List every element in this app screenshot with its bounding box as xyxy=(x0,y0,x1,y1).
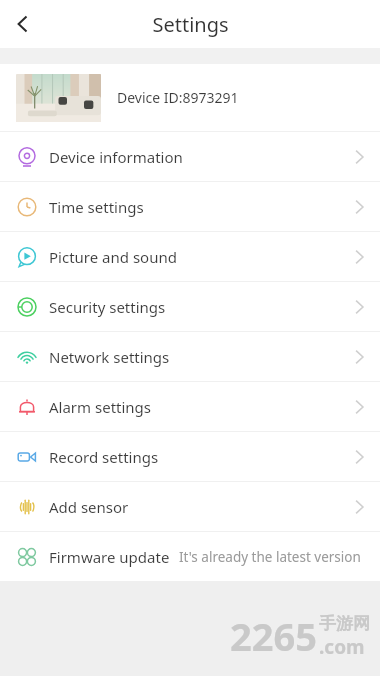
staticText: Time settings xyxy=(49,197,144,217)
staticText: Device information xyxy=(49,147,183,167)
staticText: .com xyxy=(319,634,365,660)
button[interactable]: Alarm settings xyxy=(0,382,380,431)
button[interactable]: Network settings xyxy=(0,332,380,381)
button[interactable]: Firmware update xyxy=(0,532,380,581)
staticText: Alarm settings xyxy=(49,397,152,417)
staticText: Add sensor xyxy=(49,497,129,517)
button[interactable]: Picture and sound xyxy=(0,232,380,281)
staticText: Security settings xyxy=(49,297,166,317)
staticText: It's already the latest version xyxy=(179,548,361,566)
staticText: Settings xyxy=(152,11,229,38)
staticText: Device ID:8973291 xyxy=(117,88,239,107)
button[interactable]: Security settings xyxy=(0,282,380,331)
button[interactable]: Device information xyxy=(0,132,380,181)
staticText: Record settings xyxy=(49,447,159,467)
staticText: Firmware update xyxy=(49,547,170,567)
staticText: Network settings xyxy=(49,347,170,367)
staticText: 2265 xyxy=(230,610,317,662)
staticText: Picture and sound xyxy=(49,247,177,267)
button[interactable]: Add sensor xyxy=(0,482,380,531)
button[interactable]: Record settings xyxy=(0,432,380,481)
staticText: 手游网 xyxy=(319,613,370,634)
button[interactable]: Back xyxy=(0,1,46,47)
button[interactable]: Time settings xyxy=(0,182,380,231)
button[interactable]: Device ID:8973291 xyxy=(0,64,380,131)
